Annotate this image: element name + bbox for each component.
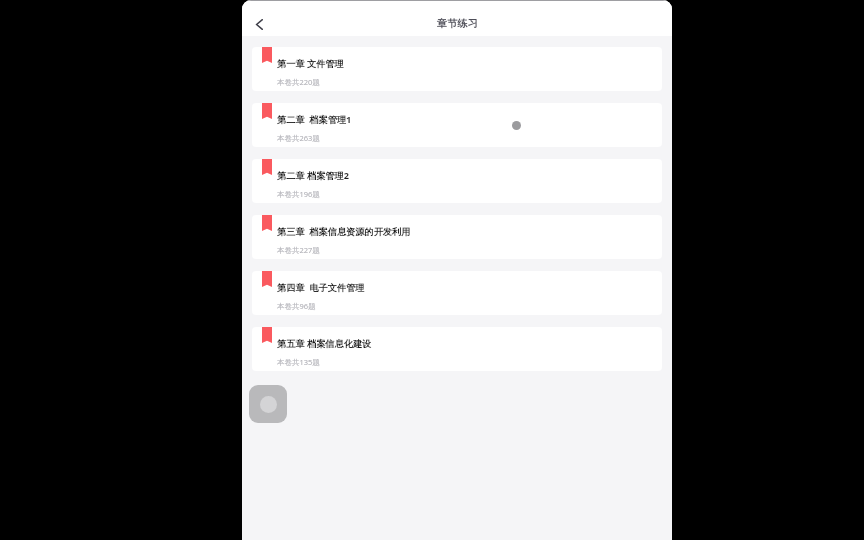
staticText: 本卷共135题 [277, 357, 320, 367]
button[interactable]: 第五章 档案信息化建设 [252, 327, 662, 371]
staticText: 本卷共220题 [277, 77, 320, 87]
staticText: 本卷共263题 [277, 133, 320, 143]
staticText: 第一章 文件管理 [277, 57, 344, 70]
staticText: 本卷共196题 [277, 189, 320, 199]
staticText: 第二章 档案管理1 [277, 113, 352, 126]
button[interactable]: 第二章 档案管理1 [252, 103, 662, 147]
staticText: 第五章 档案信息化建设 [277, 337, 372, 350]
button[interactable]: 第一章 文件管理 [252, 47, 662, 91]
staticText: 第四章 电子文件管理 [277, 281, 365, 294]
button[interactable]: 第二章 档案管理2 [252, 159, 662, 203]
button[interactable]: 第三章 档案信息资源的开发利用 [252, 215, 662, 259]
staticText: 第二章 档案管理2 [277, 169, 349, 182]
staticText: 第三章 档案信息资源的开发利用 [277, 225, 411, 238]
staticText: 本卷共227题 [277, 245, 320, 255]
staticText: 本卷共96题 [277, 301, 316, 311]
staticText: 章节练习 [437, 17, 478, 30]
button[interactable]: Back [243, 8, 275, 40]
button[interactable]: 第四章 电子文件管理 [252, 271, 662, 315]
button[interactable]: Start practice [249, 385, 287, 423]
